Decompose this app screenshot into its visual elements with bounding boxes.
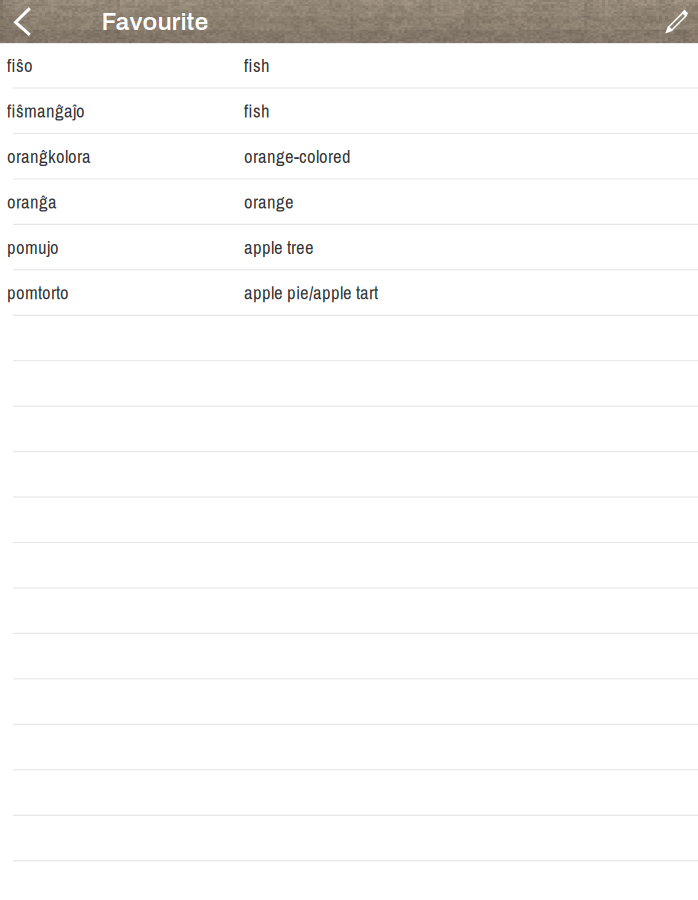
button[interactable]: pomujo <box>0 225 698 271</box>
button[interactable] <box>0 816 698 861</box>
button[interactable] <box>0 589 698 634</box>
button[interactable] <box>0 770 698 816</box>
button[interactable]: Edit <box>644 0 698 43</box>
staticText: apple tree <box>244 235 314 260</box>
staticText: oranĝa <box>7 189 57 214</box>
staticText: fish <box>244 53 270 78</box>
staticText: fiŝo <box>7 53 33 78</box>
staticText: oranĝkolora <box>7 144 91 169</box>
button[interactable]: oranĝkolora <box>0 134 698 180</box>
staticText: fiŝmanĝaĵo <box>7 98 85 123</box>
staticText: apple pie/apple tart <box>244 280 378 305</box>
button[interactable] <box>0 680 698 725</box>
staticText: orange-colored <box>244 144 351 169</box>
staticText: orange <box>244 189 294 214</box>
button[interactable]: Back <box>0 0 54 43</box>
staticText: fish <box>244 98 270 123</box>
button[interactable] <box>0 407 698 452</box>
button[interactable]: fiŝo <box>0 43 698 89</box>
staticText: Favourite <box>101 8 208 35</box>
staticText: pomtorto <box>7 280 69 305</box>
staticText: pomujo <box>7 235 59 260</box>
button[interactable]: pomtorto <box>0 271 698 316</box>
button[interactable]: fiŝmanĝaĵo <box>0 89 698 134</box>
button[interactable]: oranĝa <box>0 180 698 225</box>
button[interactable] <box>0 316 698 361</box>
button[interactable] <box>0 361 698 407</box>
button[interactable] <box>0 498 698 543</box>
